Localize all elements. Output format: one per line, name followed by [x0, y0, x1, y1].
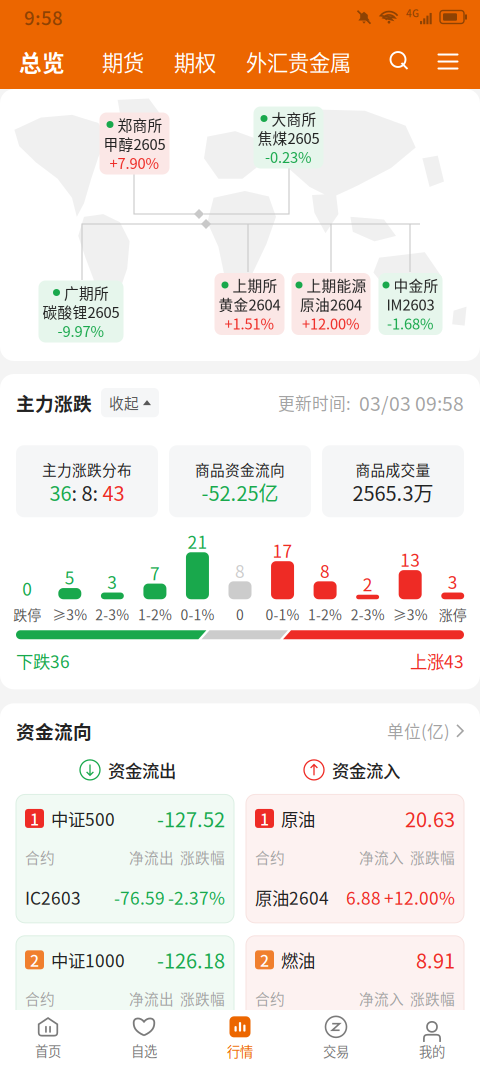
staticText: 20.63 [405, 804, 455, 833]
staticText: 0-1% [265, 604, 299, 624]
staticText: 净流出 [129, 846, 174, 868]
staticText: 首页 [35, 1041, 61, 1060]
staticText: IC2603 [25, 1026, 81, 1051]
staticText: 主力涨跌分布 [42, 459, 132, 480]
staticText: 中证1000 [51, 947, 125, 972]
staticText: +12.00% [384, 885, 455, 910]
staticText: 合约 [255, 988, 285, 1009]
staticText: 总览 [19, 45, 65, 78]
staticText: 甲醇2605 [103, 133, 165, 154]
staticText: -76.59 [114, 1026, 165, 1051]
staticText: 燃油2605 [255, 1026, 329, 1051]
staticText: 43 [102, 478, 124, 507]
staticText: 我的 [419, 1041, 445, 1061]
staticText: 期货 [102, 46, 144, 77]
staticText: 3 [448, 569, 458, 594]
staticText: 合约 [25, 846, 55, 868]
staticText: 涨跌幅 [410, 988, 455, 1009]
staticText: 燃油 [281, 947, 315, 972]
staticText: 商品资金流向 [195, 459, 285, 480]
staticText: 8 [235, 558, 245, 583]
button[interactable]: 行情 [192, 1010, 288, 1067]
staticText: 净流出 [129, 988, 174, 1009]
staticText: 主力涨跌 [16, 389, 92, 416]
staticText: IM2603 [386, 293, 434, 315]
staticText: 0-1% [180, 604, 214, 624]
staticText: 净流入 [359, 846, 404, 868]
staticText: 1-2% [308, 604, 342, 624]
button[interactable]: 我的 [384, 1010, 480, 1067]
button[interactable]: 外汇贵金属 [246, 46, 351, 77]
staticText: 4G [406, 6, 419, 20]
staticText: 单位(亿) [387, 719, 450, 743]
button[interactable]: 首页 [0, 1010, 96, 1067]
staticText: : [92, 478, 102, 507]
staticText: +7.90% [109, 152, 159, 173]
staticText: 中金所 [393, 274, 438, 296]
staticText: 跌停 [13, 604, 41, 624]
staticText: 1-2% [138, 604, 172, 624]
staticText: 1 [260, 807, 269, 830]
staticText: ≥3% [52, 604, 87, 624]
staticText: 2565.3万 [352, 478, 433, 507]
staticText: 收起 [109, 392, 139, 413]
staticText: IC2603 [25, 885, 81, 910]
staticText: -9.97% [57, 320, 104, 341]
staticText: 2 [363, 571, 373, 596]
staticText: -127.52 [157, 804, 225, 833]
staticText: -1.68% [387, 312, 434, 334]
button[interactable]: 期权 [174, 46, 216, 77]
staticText: 17 [272, 538, 292, 563]
staticText: 0 [22, 576, 32, 601]
staticText: 8.91 [416, 945, 455, 974]
staticText: +1.51% [224, 312, 274, 334]
staticText: 广期所 [64, 282, 109, 303]
staticText: 资金流出 [108, 757, 176, 782]
staticText: 上期所 [232, 274, 277, 296]
staticText: 36 [49, 478, 71, 507]
staticText: 涨跌幅 [180, 846, 225, 868]
staticText: 涨跌幅 [410, 846, 455, 868]
button[interactable]: 菜单 [435, 48, 461, 74]
staticText: 合约 [255, 846, 285, 868]
staticText: 上涨43 [410, 648, 464, 673]
staticText: 资金流入 [332, 757, 400, 782]
staticText: +5.00% [394, 1026, 455, 1051]
staticText: 8 [81, 478, 92, 507]
staticText: 1 [30, 807, 39, 830]
button[interactable]: 总览 [19, 45, 65, 78]
button[interactable]: 单位(亿) [387, 719, 464, 743]
staticText: 2-3% [351, 604, 385, 624]
staticText: 下跌36 [16, 648, 70, 673]
staticText: 原油2604 [255, 885, 329, 910]
staticText: 资金流向 [16, 717, 92, 744]
staticText: 更新时间: [278, 391, 351, 415]
staticText: 5 [65, 564, 75, 590]
button[interactable]: 自选 [96, 1010, 192, 1067]
staticText: 上期能源 [306, 274, 366, 296]
staticText: 2-3% [95, 604, 129, 624]
staticText: 21 [187, 529, 207, 554]
staticText: 合约 [25, 988, 55, 1009]
button[interactable]: 交易 [288, 1010, 384, 1067]
button[interactable]: 搜索 [387, 48, 413, 74]
staticText: 2 [260, 948, 269, 971]
staticText: 郑商所 [117, 114, 162, 135]
staticText: 13 [400, 547, 420, 572]
staticText: -0.23% [265, 146, 312, 167]
staticText: 商品成交量 [355, 459, 430, 480]
staticText: 行情 [227, 1041, 253, 1061]
staticText: 2 [30, 948, 39, 971]
staticText: 交易 [323, 1041, 349, 1061]
staticText: 大商所 [271, 108, 316, 129]
staticText: -76.59 [114, 885, 165, 910]
staticText: 6.88 [346, 885, 381, 910]
staticText: 期权 [174, 46, 216, 77]
staticText: 7 [150, 560, 160, 585]
staticText: 外汇贵金属 [246, 46, 351, 77]
button[interactable]: 收起 [101, 388, 159, 417]
button[interactable]: 期货 [102, 46, 144, 77]
staticText: -52.25亿 [201, 478, 278, 507]
staticText: 03/03 09:58 [359, 389, 464, 417]
